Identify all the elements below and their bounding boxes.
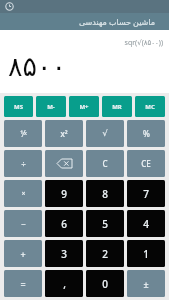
button[interactable]: % (127, 120, 165, 147)
button[interactable]: ÷ (4, 150, 42, 177)
button[interactable]: MC (135, 96, 165, 117)
staticText: sqr(√(۸۵۰۰)) (124, 38, 163, 48)
staticText: , (63, 277, 66, 291)
button[interactable]: 0 (86, 270, 124, 297)
staticText: % (143, 128, 150, 139)
button[interactable]: C (86, 150, 124, 177)
button[interactable]: = (4, 270, 42, 297)
button[interactable]: 4 (127, 210, 165, 237)
button[interactable]: , (45, 270, 83, 297)
staticText: 1 (143, 247, 149, 261)
staticText: ¹⁄ˣ (20, 128, 27, 139)
staticText: = (20, 278, 26, 290)
button[interactable]: ± (127, 270, 165, 297)
staticText: M+ (79, 103, 89, 111)
staticText: 6 (61, 217, 67, 231)
staticText: MR (112, 103, 122, 111)
button[interactable]: MR (102, 96, 132, 117)
staticText: ± (143, 278, 149, 290)
staticText: × (21, 189, 26, 199)
button[interactable]: MS (4, 96, 33, 117)
staticText: 0 (102, 277, 108, 291)
staticText: 4 (143, 217, 149, 231)
button[interactable]: √ (86, 120, 124, 147)
staticText: ماشین حساب مهندسی (78, 16, 155, 27)
staticText: 3 (61, 247, 67, 261)
button[interactable]: − (4, 210, 42, 237)
button[interactable]: 7 (127, 180, 165, 207)
staticText: 5 (102, 217, 108, 231)
button[interactable]: ¹⁄ˣ (4, 120, 42, 147)
button[interactable]: 3 (45, 240, 83, 267)
staticText: MC (145, 103, 155, 111)
staticText: − (21, 218, 26, 229)
button[interactable]: M- (36, 96, 66, 117)
staticText: 7 (143, 187, 149, 201)
staticText: 9 (61, 187, 67, 201)
button[interactable]: Backspace (45, 150, 83, 177)
other: Alarm (5, 2, 14, 11)
staticText: ۸۵۰۰ (8, 51, 67, 82)
button[interactable]: × (4, 180, 42, 207)
staticText: + (20, 248, 26, 260)
staticText: C (102, 158, 108, 169)
button[interactable]: M+ (69, 96, 99, 117)
staticText: 8 (102, 187, 108, 201)
button[interactable]: 1 (127, 240, 165, 267)
staticText: √ (102, 129, 108, 138)
staticText: MS (14, 103, 23, 111)
button[interactable]: 5 (86, 210, 124, 237)
button[interactable]: + (4, 240, 42, 267)
staticText: 2 (102, 247, 108, 261)
button[interactable]: 2 (86, 240, 124, 267)
button[interactable]: CE (127, 150, 165, 177)
button[interactable]: 8 (86, 180, 124, 207)
staticText: ÷ (21, 158, 26, 169)
button[interactable]: 6 (45, 210, 83, 237)
button[interactable]: 9 (45, 180, 83, 207)
staticText: M- (47, 103, 55, 111)
staticText: CE (141, 158, 151, 169)
staticText: x² (60, 128, 68, 139)
button[interactable]: x² (45, 120, 83, 147)
